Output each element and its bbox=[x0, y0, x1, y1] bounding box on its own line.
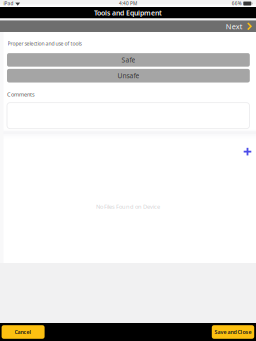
staticText: Proper selection and use of tools bbox=[7, 40, 81, 47]
button[interactable]: Save and Close bbox=[212, 325, 254, 339]
staticText: Safe bbox=[121, 55, 135, 64]
staticText: Cancel bbox=[15, 328, 32, 336]
staticText: Save and Close bbox=[214, 328, 251, 336]
button[interactable]: Next bbox=[226, 21, 256, 32]
button[interactable]: Add attachment bbox=[240, 144, 255, 159]
staticText: Unsafe bbox=[117, 71, 139, 80]
staticText: iPad bbox=[3, 0, 13, 7]
button[interactable]: Cancel bbox=[2, 325, 45, 339]
staticText: Tools and Equipment bbox=[94, 8, 162, 17]
staticText: No Files Found on Device bbox=[96, 203, 160, 210]
staticText: 4:40 PM bbox=[119, 0, 137, 7]
staticText: Next bbox=[226, 21, 243, 31]
staticText: Comments bbox=[7, 90, 35, 98]
staticText: 66% bbox=[232, 0, 242, 7]
button[interactable]: Unsafe bbox=[7, 69, 250, 82]
button[interactable]: Safe bbox=[7, 53, 250, 67]
